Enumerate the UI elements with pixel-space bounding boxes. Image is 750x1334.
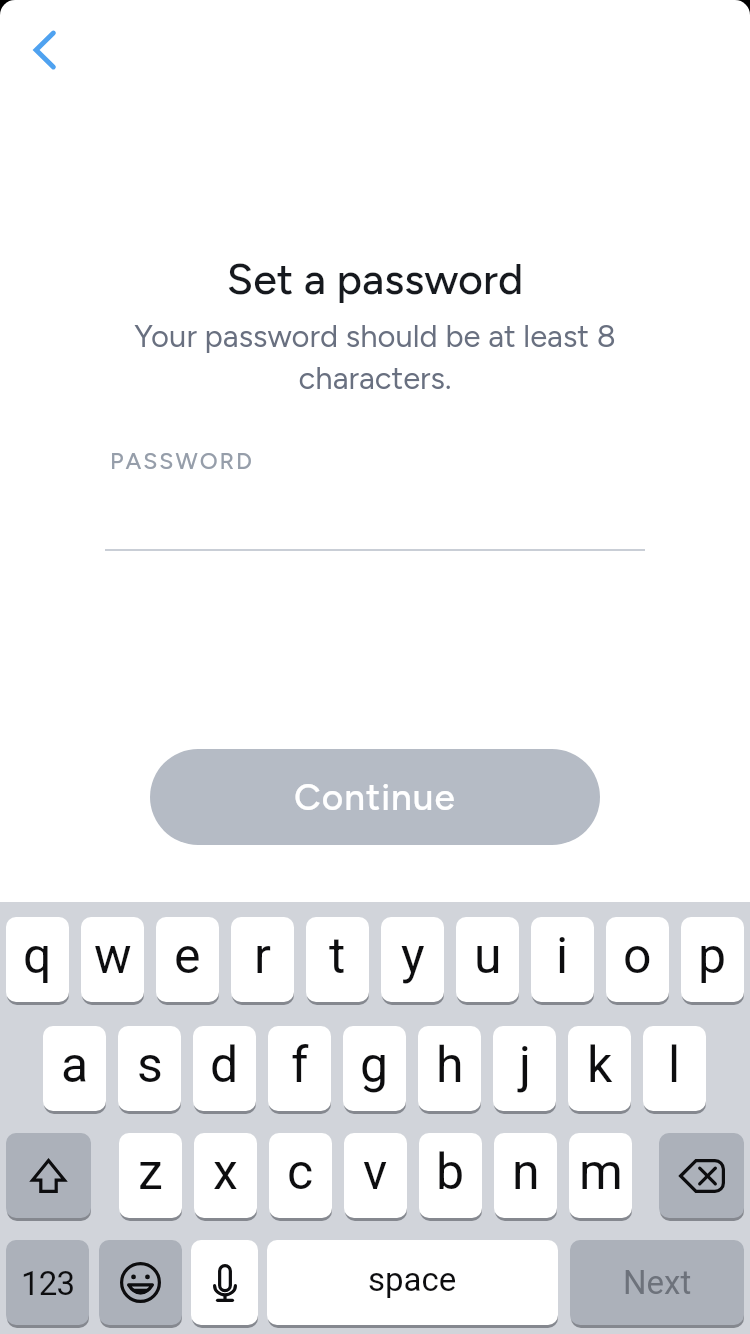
staticText: o [623, 927, 652, 986]
button[interactable]: 123 [6, 1240, 89, 1325]
staticText: y [401, 927, 425, 986]
staticText: p [698, 927, 727, 986]
button[interactable]: d [193, 1026, 256, 1111]
staticText: r [254, 927, 271, 986]
staticText: c [287, 1143, 314, 1202]
staticText: v [363, 1143, 388, 1202]
staticText: w [94, 927, 132, 986]
button[interactable]: Shift [6, 1133, 91, 1218]
button[interactable]: i [531, 917, 594, 1002]
staticText: space [368, 1260, 457, 1299]
button[interactable]: r [231, 917, 294, 1002]
button[interactable]: Voice input [191, 1240, 258, 1325]
button[interactable]: m [569, 1133, 632, 1218]
button[interactable]: a [43, 1026, 106, 1111]
button[interactable]: w [81, 917, 144, 1002]
button[interactable]: f [268, 1026, 331, 1111]
staticText: l [668, 1036, 681, 1095]
staticText: Set a password [0, 253, 750, 305]
button[interactable]: s [118, 1026, 181, 1111]
button[interactable]: u [456, 917, 519, 1002]
staticText: h [436, 1036, 464, 1095]
staticText: q [23, 927, 52, 986]
button[interactable]: PASSWORD [105, 440, 645, 551]
button[interactable]: g [343, 1026, 406, 1111]
button[interactable]: h [418, 1026, 481, 1111]
button[interactable]: b [419, 1133, 482, 1218]
staticText: j [519, 1036, 531, 1095]
button[interactable]: Continue [150, 749, 600, 845]
button[interactable]: z [119, 1133, 182, 1218]
staticText: t [329, 927, 346, 986]
staticText: z [138, 1143, 163, 1202]
button[interactable]: j [493, 1026, 556, 1111]
staticText: x [213, 1143, 238, 1202]
staticText: Your password should be at least 8 chara… [0, 318, 750, 397]
button[interactable]: Back [8, 14, 80, 86]
staticText: m [579, 1143, 623, 1202]
button[interactable]: q [6, 917, 69, 1002]
button[interactable]: Emoji [99, 1240, 182, 1325]
staticText: n [512, 1143, 540, 1202]
staticText: 123 [21, 1264, 75, 1303]
staticText: f [291, 1036, 309, 1095]
staticText: u [474, 927, 502, 986]
button[interactable]: Backspace [659, 1133, 744, 1218]
button[interactable]: Next [570, 1240, 744, 1325]
staticText: b [436, 1143, 465, 1202]
button[interactable]: c [269, 1133, 332, 1218]
button[interactable]: n [494, 1133, 557, 1218]
button[interactable]: l [643, 1026, 706, 1111]
staticText: a [61, 1036, 89, 1095]
staticText: i [556, 927, 569, 986]
staticText: Continue [294, 775, 456, 819]
staticText: k [587, 1036, 613, 1095]
button[interactable]: v [344, 1133, 407, 1218]
staticText: Next [623, 1263, 692, 1302]
button[interactable]: k [568, 1026, 631, 1111]
button[interactable]: y [381, 917, 444, 1002]
button[interactable]: t [306, 917, 369, 1002]
staticText: d [210, 1036, 239, 1095]
button[interactable]: space [267, 1240, 558, 1325]
staticText: g [360, 1036, 389, 1095]
staticText: s [137, 1036, 163, 1095]
staticText: PASSWORD [110, 447, 254, 475]
button[interactable]: p [681, 917, 744, 1002]
button[interactable]: o [606, 917, 669, 1002]
button[interactable]: x [194, 1133, 257, 1218]
button[interactable]: e [156, 917, 219, 1002]
staticText: e [174, 927, 201, 986]
